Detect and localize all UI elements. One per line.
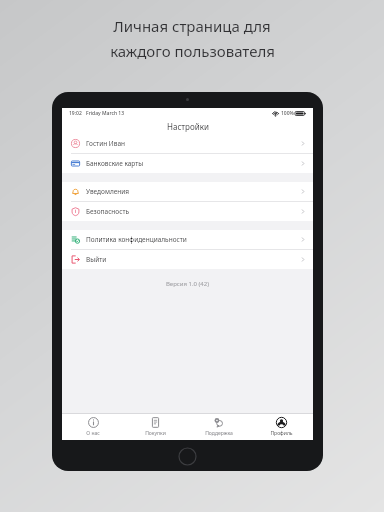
button[interactable]: Профиль bbox=[250, 414, 313, 440]
staticText: Friday March 13 bbox=[86, 110, 125, 117]
button[interactable]: Гостин Иван bbox=[62, 134, 313, 153]
staticText: Уведомления bbox=[86, 187, 130, 196]
staticText: Покупки bbox=[145, 430, 166, 437]
button[interactable]: Поддержка bbox=[187, 414, 250, 440]
staticText: Версия 1.0 (42) bbox=[62, 280, 313, 288]
staticText: Поддержка bbox=[205, 430, 233, 437]
staticText: 100% bbox=[281, 110, 294, 117]
staticText: О нас bbox=[86, 430, 100, 437]
staticText: Политика конфиденциальности bbox=[86, 235, 187, 244]
staticText: Настройки bbox=[167, 121, 209, 132]
button[interactable]: Выйти bbox=[62, 250, 313, 269]
button[interactable]: Безопасность bbox=[62, 202, 313, 221]
staticText: Личная страница для bbox=[113, 16, 271, 36]
staticText: Банковские карты bbox=[86, 159, 144, 168]
button[interactable]: Уведомления bbox=[62, 182, 313, 201]
staticText: Профиль bbox=[270, 430, 293, 437]
staticText: Выйти bbox=[86, 255, 107, 264]
staticText: Гостин Иван bbox=[86, 139, 126, 148]
staticText: Безопасность bbox=[86, 207, 129, 216]
staticText: каждого пользователя bbox=[110, 41, 275, 61]
button[interactable]: Политика конфиденциальности bbox=[62, 230, 313, 249]
staticText: 19:02 bbox=[69, 110, 82, 117]
button[interactable]: Банковские карты bbox=[62, 154, 313, 173]
button[interactable]: Покупки bbox=[124, 414, 187, 440]
button[interactable]: О нас bbox=[62, 414, 124, 440]
